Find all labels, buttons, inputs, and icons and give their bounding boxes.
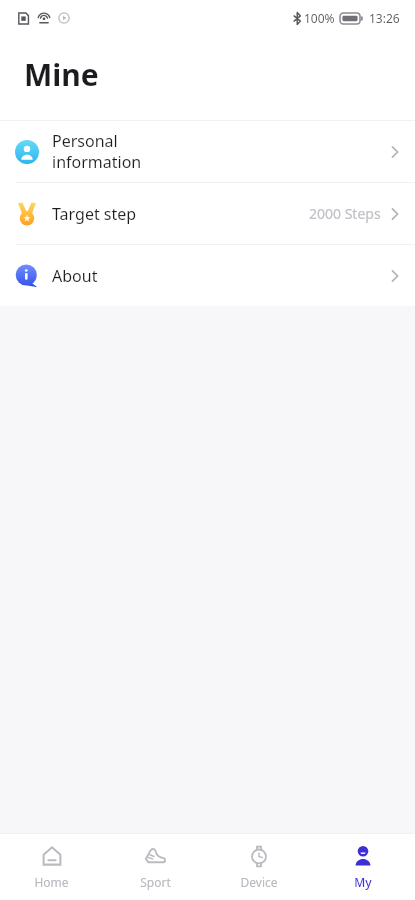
staticText: Home (34, 874, 69, 890)
staticText: Personal information (52, 130, 142, 173)
staticText: 100% (304, 10, 335, 26)
staticText: About (52, 265, 98, 287)
button[interactable]: About (0, 245, 415, 306)
staticText: Mine (24, 54, 99, 95)
staticText: 2000 Steps (309, 204, 381, 223)
staticText: Device (240, 874, 278, 890)
button[interactable]: My (311, 837, 415, 897)
staticText: My (354, 874, 372, 890)
button[interactable]: Sport (103, 837, 207, 897)
staticText: Sport (140, 874, 171, 890)
button[interactable]: Personal information (0, 121, 415, 182)
button[interactable]: Device (207, 837, 311, 897)
staticText: Target step (52, 203, 137, 225)
staticText: 13:26 (369, 10, 400, 26)
button[interactable]: Target step (0, 183, 415, 244)
button[interactable]: Home (0, 837, 103, 897)
